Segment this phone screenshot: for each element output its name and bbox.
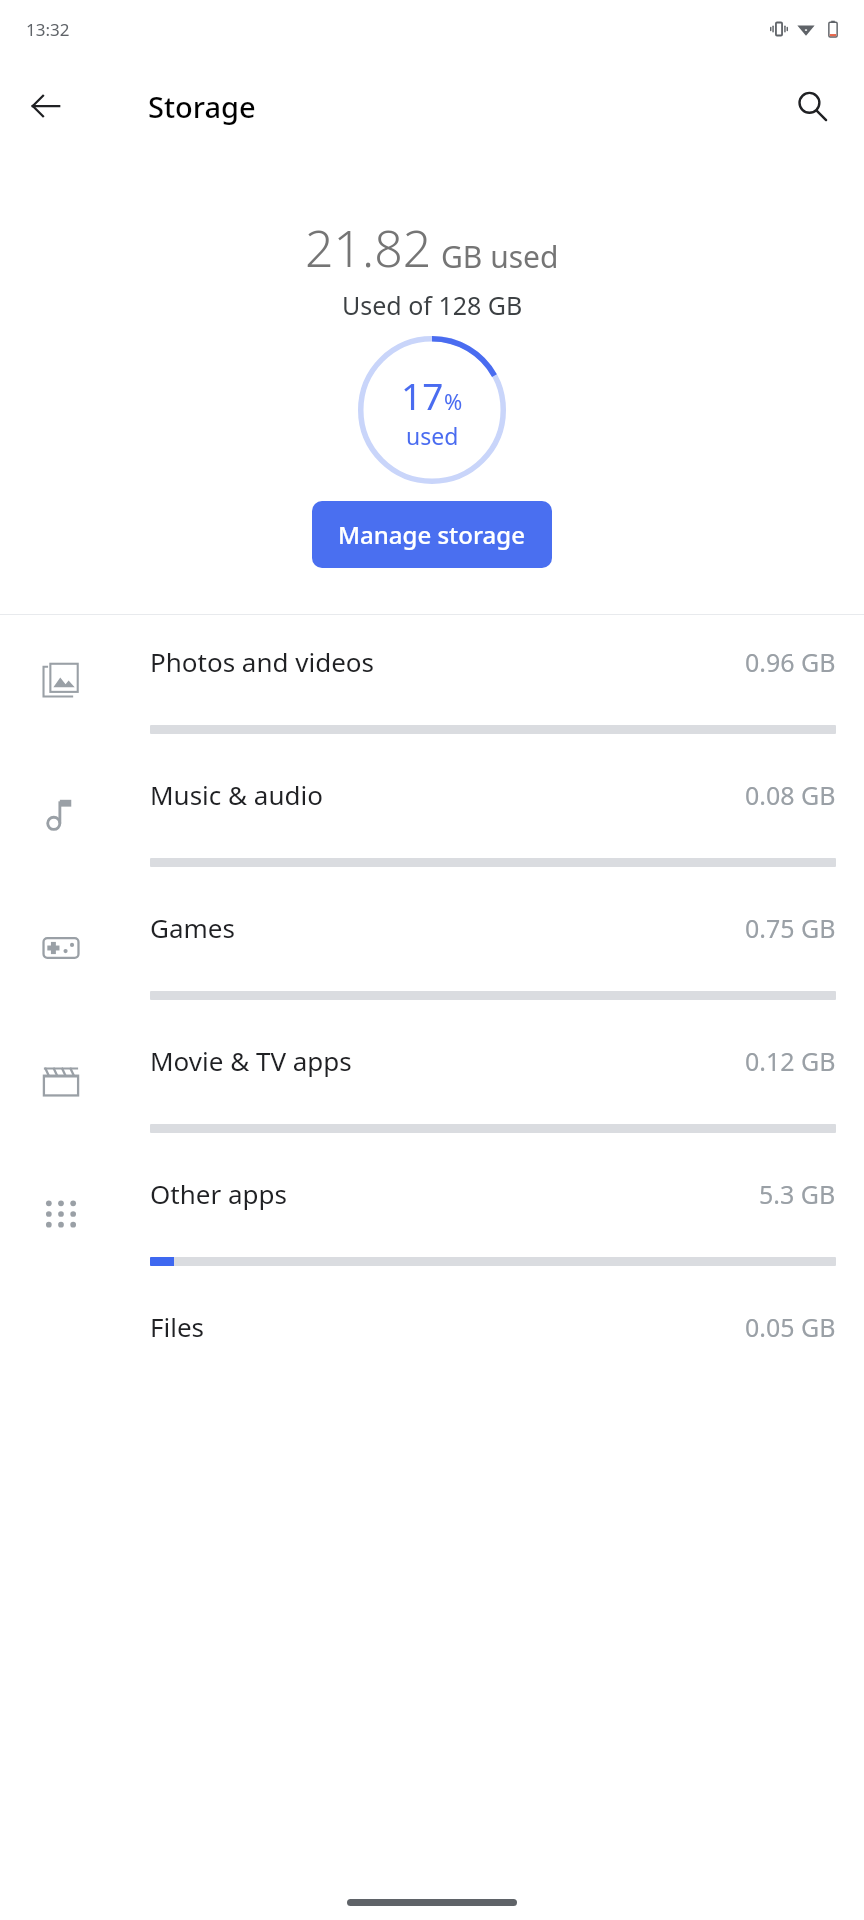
staticText: 0.96 GB: [745, 645, 836, 679]
staticText: 0.05 GB: [745, 1310, 836, 1344]
staticText: Photos and videos: [150, 644, 375, 679]
button[interactable]: Music & audio: [0, 748, 864, 881]
button[interactable]: Movie & TV apps: [0, 1014, 864, 1147]
staticText: Files: [150, 1309, 205, 1344]
staticText: Used of 128 GB: [342, 288, 523, 322]
staticText: Music & audio: [150, 777, 323, 812]
staticText: %: [444, 386, 463, 416]
staticText: 21.82: [305, 214, 432, 282]
button[interactable]: Photos and videos: [0, 615, 864, 748]
button[interactable]: Back: [14, 74, 78, 138]
staticText: 17: [401, 370, 444, 420]
staticText: Storage: [148, 87, 256, 126]
staticText: 0.08 GB: [745, 778, 836, 812]
staticText: Games: [150, 910, 235, 945]
button[interactable]: Manage storage: [312, 501, 552, 568]
staticText: 0.12 GB: [745, 1044, 836, 1078]
button[interactable]: Files: [0, 1280, 864, 1390]
button[interactable]: Other apps: [0, 1147, 864, 1280]
button[interactable]: Search: [780, 74, 844, 138]
staticText: Manage storage: [338, 518, 526, 551]
staticText: Movie & TV apps: [150, 1043, 352, 1078]
staticText: 5.3 GB: [759, 1177, 836, 1211]
staticText: 13:32: [26, 18, 70, 41]
staticText: Other apps: [150, 1176, 287, 1211]
staticText: GB used: [441, 236, 559, 277]
staticText: 0.75 GB: [745, 911, 836, 945]
staticText: used: [406, 420, 459, 451]
button[interactable]: Games: [0, 881, 864, 1014]
